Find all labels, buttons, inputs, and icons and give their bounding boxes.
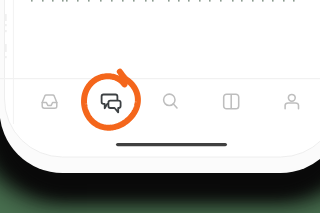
button[interactable]: Profile [261,79,320,125]
button[interactable]: Search [139,79,200,125]
button[interactable]: Split view [200,79,261,125]
button[interactable]: Chats [79,79,139,125]
button[interactable]: Inbox [19,79,79,125]
